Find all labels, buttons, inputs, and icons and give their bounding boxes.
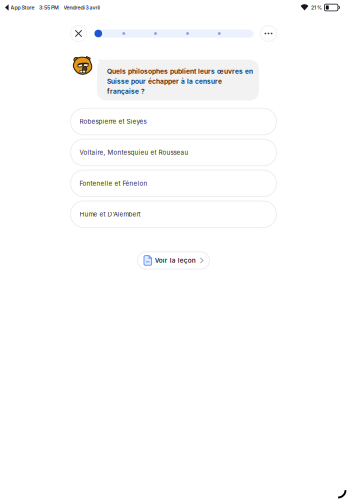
button[interactable]: Fermer [70,25,86,41]
staticText: Fontenelle et Fénelon [79,180,147,187]
staticText: Voir la leçon [155,257,196,264]
staticText: Vendredi 3 avril [64,4,100,11]
button[interactable]: Voir la leçon [137,252,209,269]
button[interactable]: Hume et D'Alembert [70,201,276,227]
button[interactable]: Voltaire, Montesquieu et Rousseau [70,139,276,166]
button[interactable]: Robespierre et Sieyès [70,108,276,135]
staticText: Hume et D'Alembert [79,210,140,218]
button[interactable]: Fontenelle et Fénelon [70,170,276,197]
staticText: 3:55 PM [39,4,59,11]
staticText: App Store [11,4,35,11]
staticText: Robespierre et Sieyès [79,118,146,125]
staticText: Voltaire, Montesquieu et Rousseau [79,149,188,156]
staticText: 21 % [311,4,322,11]
button[interactable]: Plus d'options [260,25,276,41]
staticText: Quels philosophes publient leurs œuvres … [107,67,253,95]
